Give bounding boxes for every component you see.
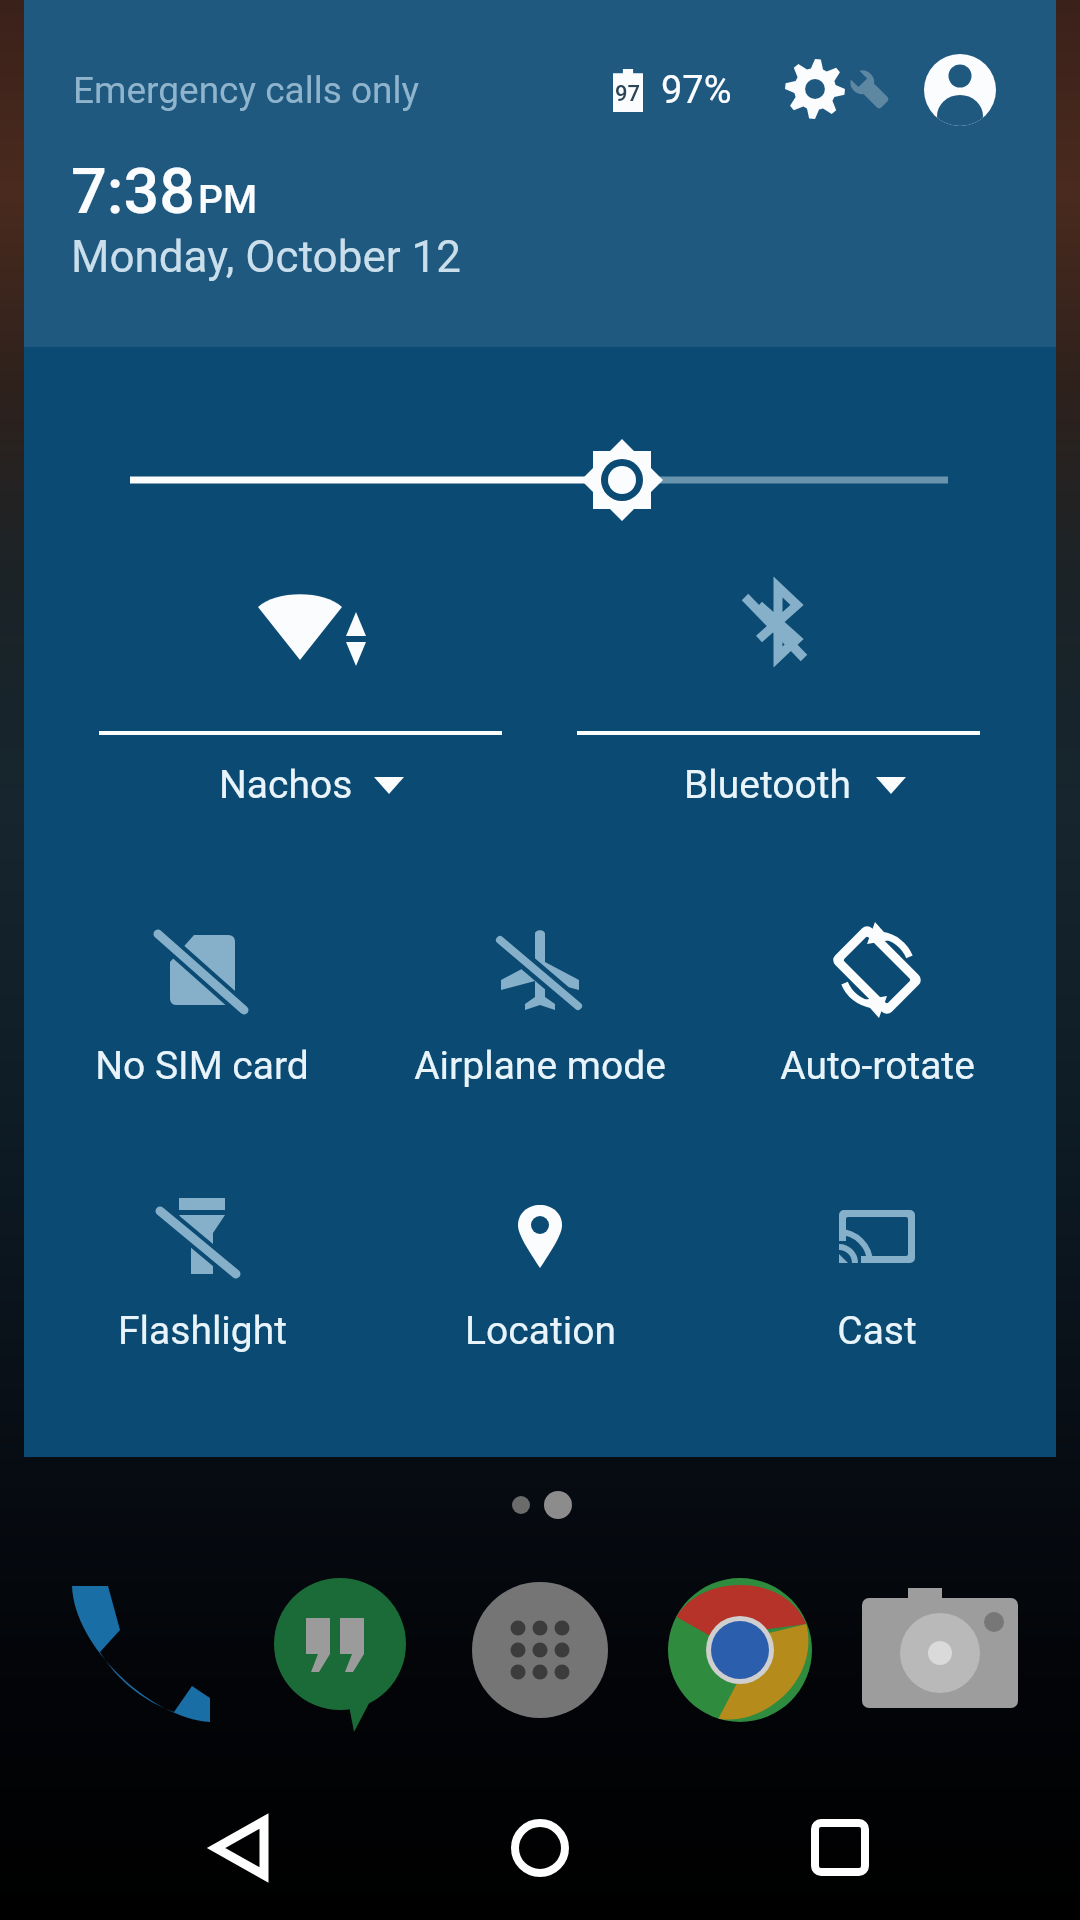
button[interactable]: User account (922, 52, 998, 128)
staticText: Flashlight (118, 1308, 287, 1354)
button[interactable]: Apps (450, 1560, 630, 1740)
staticText: No SIM card (95, 1043, 309, 1089)
button[interactable]: Settings (780, 55, 895, 125)
staticText: Emergency calls only (73, 69, 419, 112)
button[interactable]: Bluetooth (577, 590, 981, 820)
staticText: 7:38 (71, 155, 196, 229)
staticText: 97% (661, 68, 732, 113)
button[interactable]: Camera (850, 1560, 1030, 1740)
button[interactable]: Auto-rotate (709, 882, 1045, 1112)
button[interactable]: Nachos (99, 590, 503, 820)
staticText: Bluetooth (684, 762, 852, 808)
button[interactable]: Back (190, 1796, 294, 1900)
button[interactable]: No SIM card (34, 882, 370, 1112)
button[interactable]: Hangouts (250, 1560, 430, 1740)
button[interactable]: Airplane mode (372, 882, 708, 1112)
staticText: 97 (615, 81, 641, 107)
button[interactable]: Brightness (110, 425, 970, 535)
staticText: Auto-rotate (780, 1043, 975, 1089)
staticText: Nachos (219, 762, 353, 808)
button[interactable]: Cast (709, 1148, 1045, 1378)
staticText: Airplane mode (414, 1043, 666, 1089)
staticText: Monday, October 12 (71, 231, 462, 283)
staticText: PM (198, 177, 258, 223)
button[interactable]: Recent apps (788, 1796, 892, 1900)
staticText: Location (465, 1308, 616, 1354)
staticText: Cast (837, 1308, 917, 1354)
button[interactable]: Location (372, 1148, 708, 1378)
button[interactable]: Home (488, 1796, 592, 1900)
button[interactable]: Chrome (650, 1560, 830, 1740)
button[interactable]: Phone (50, 1560, 230, 1740)
button[interactable]: Flashlight (34, 1148, 370, 1378)
